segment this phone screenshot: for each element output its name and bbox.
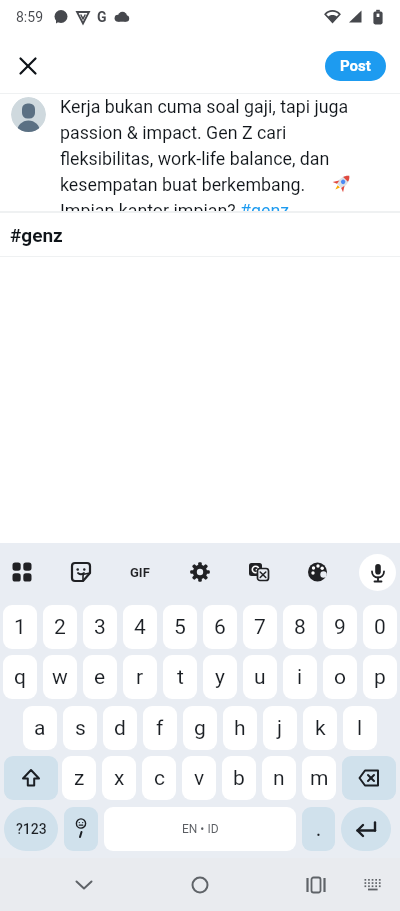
button[interactable]: [353, 865, 393, 905]
staticText: 9: [334, 615, 346, 640]
button[interactable]: c: [142, 756, 176, 800]
button[interactable]: n: [262, 756, 296, 800]
button[interactable]: EN • ID: [104, 807, 296, 851]
button[interactable]: [241, 554, 277, 590]
button[interactable]: [4, 554, 40, 590]
button[interactable]: 2: [43, 605, 77, 649]
button[interactable]: i: [283, 655, 317, 699]
button[interactable]: k: [303, 706, 337, 750]
staticText: 8:59: [16, 9, 43, 25]
staticText: o: [334, 665, 346, 690]
staticText: r: [136, 665, 144, 690]
staticText: g: [194, 716, 206, 741]
staticText: 4: [134, 615, 146, 640]
staticText: 3: [94, 615, 106, 640]
button[interactable]: GIF: [122, 554, 158, 590]
staticText: t: [177, 665, 184, 690]
staticText: x: [114, 766, 125, 791]
staticText: p: [374, 665, 386, 690]
button[interactable]: 1: [3, 605, 37, 649]
button[interactable]: 9: [323, 605, 357, 649]
staticText: GIF: [130, 565, 150, 580]
button[interactable]: w: [43, 655, 77, 699]
button[interactable]: a: [23, 706, 57, 750]
button[interactable]: l: [343, 706, 377, 750]
button[interactable]: [180, 865, 220, 905]
button[interactable]: [342, 756, 396, 800]
staticText: ?123: [16, 821, 47, 837]
button[interactable]: [64, 865, 104, 905]
button[interactable]: j: [263, 706, 297, 750]
button[interactable]: Kerja bukan cuma soal gaji, tapi juga pa…: [60, 96, 349, 211]
button[interactable]: [300, 554, 336, 590]
button[interactable]: 3: [83, 605, 117, 649]
staticText: u: [254, 665, 266, 690]
staticText: q: [14, 665, 26, 690]
button[interactable]: [182, 554, 218, 590]
staticText: l: [357, 716, 363, 741]
button[interactable]: f: [143, 706, 177, 750]
staticText: 5: [174, 615, 186, 640]
staticText: 2: [54, 615, 66, 640]
button[interactable]: q: [3, 655, 37, 699]
staticText: 0: [374, 615, 386, 640]
staticText: m: [310, 766, 329, 791]
staticText: 8: [294, 615, 306, 640]
button[interactable]: [296, 865, 336, 905]
button[interactable]: v: [182, 756, 216, 800]
button[interactable]: m: [302, 756, 336, 800]
staticText: k: [315, 716, 326, 741]
button[interactable]: [341, 807, 391, 851]
button[interactable]: u: [243, 655, 277, 699]
button[interactable]: [64, 807, 98, 851]
staticText: e: [94, 665, 106, 690]
staticText: z: [74, 766, 85, 791]
button[interactable]: r: [123, 655, 157, 699]
staticText: .: [316, 819, 322, 840]
staticText: G: [97, 9, 107, 25]
button[interactable]: h: [223, 706, 257, 750]
button[interactable]: Post: [325, 51, 386, 81]
staticText: f: [156, 716, 164, 741]
button[interactable]: z: [62, 756, 96, 800]
staticText: v: [194, 766, 205, 791]
button[interactable]: 4: [123, 605, 157, 649]
staticText: j: [277, 716, 283, 741]
staticText: n: [273, 766, 285, 791]
button[interactable]: #genz: [0, 213, 400, 256]
staticText: EN • ID: [182, 822, 219, 836]
button[interactable]: x: [102, 756, 136, 800]
button[interactable]: [12, 50, 44, 82]
staticText: b: [233, 766, 245, 791]
staticText: Post: [340, 57, 371, 75]
button[interactable]: 7: [243, 605, 277, 649]
staticText: i: [297, 665, 303, 690]
button[interactable]: s: [63, 706, 97, 750]
button[interactable]: [359, 554, 396, 591]
staticText: #genz: [10, 224, 63, 246]
button[interactable]: ?123: [4, 807, 58, 851]
button[interactable]: 8: [283, 605, 317, 649]
button[interactable]: .: [302, 807, 335, 851]
button[interactable]: 6: [203, 605, 237, 649]
button[interactable]: e: [83, 655, 117, 699]
staticText: w: [52, 665, 68, 690]
staticText: c: [154, 766, 165, 791]
staticText: 6: [214, 615, 226, 640]
button[interactable]: b: [222, 756, 256, 800]
button[interactable]: t: [163, 655, 197, 699]
button[interactable]: [63, 554, 99, 590]
staticText: h: [234, 716, 246, 741]
button[interactable]: g: [183, 706, 217, 750]
button[interactable]: y: [203, 655, 237, 699]
button[interactable]: d: [103, 706, 137, 750]
button[interactable]: 0: [363, 605, 397, 649]
button[interactable]: p: [363, 655, 397, 699]
staticText: a: [34, 716, 46, 741]
staticText: 7: [254, 615, 266, 640]
button[interactable]: [4, 756, 58, 800]
button[interactable]: 5: [163, 605, 197, 649]
button[interactable]: o: [323, 655, 357, 699]
staticText: s: [75, 716, 86, 741]
staticText: 1: [14, 615, 26, 640]
